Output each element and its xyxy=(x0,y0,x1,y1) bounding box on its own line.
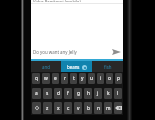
button[interactable]: p xyxy=(115,73,122,84)
staticText: m xyxy=(106,105,111,112)
button[interactable]: Send xyxy=(111,48,122,56)
staticText: y xyxy=(81,75,84,82)
staticText: n xyxy=(97,105,100,112)
button[interactable]: d xyxy=(54,88,62,99)
button[interactable]: beans xyxy=(61,61,92,72)
button[interactable]: Shift xyxy=(32,102,41,114)
button[interactable]: k xyxy=(104,88,112,99)
staticText: t xyxy=(73,75,75,82)
staticText: Do you want any Jelly xyxy=(33,49,77,55)
staticText: x xyxy=(57,105,60,112)
staticText: e xyxy=(54,75,57,82)
staticText: z xyxy=(46,105,49,112)
staticText: p xyxy=(117,75,120,82)
button[interactable]: o xyxy=(106,73,113,84)
staticText: beans xyxy=(67,64,80,70)
other: Backspace xyxy=(115,106,122,110)
staticText: h xyxy=(87,90,90,97)
button[interactable]: a xyxy=(32,88,41,99)
staticText: Vidya Ramkarni (mobile) xyxy=(33,0,81,2)
staticText: s xyxy=(46,90,49,97)
staticText: c xyxy=(67,105,70,112)
button[interactable]: j xyxy=(94,88,102,99)
staticText: u xyxy=(90,75,93,82)
button[interactable]: e xyxy=(52,73,59,84)
staticText: l xyxy=(117,90,119,97)
button[interactable]: x xyxy=(54,102,62,114)
button[interactable]: b xyxy=(84,102,92,114)
button[interactable]: Backspace xyxy=(114,102,122,114)
staticText: i xyxy=(100,75,102,82)
staticText: r xyxy=(64,75,66,82)
button[interactable]: s xyxy=(43,88,52,99)
button[interactable]: fish xyxy=(92,61,123,72)
staticText: g xyxy=(77,90,80,97)
staticText: b xyxy=(87,105,90,112)
button[interactable]: n xyxy=(94,102,102,114)
staticText: fish xyxy=(104,64,112,70)
staticText: d xyxy=(57,90,60,97)
button[interactable]: v xyxy=(74,102,82,114)
button[interactable]: q xyxy=(32,73,40,84)
button[interactable]: z xyxy=(43,102,52,114)
staticText: q xyxy=(35,75,38,82)
staticText: a xyxy=(35,90,38,97)
button[interactable]: c xyxy=(64,102,72,114)
staticText: o xyxy=(108,75,111,82)
staticText: f xyxy=(67,90,69,97)
button[interactable]: l xyxy=(114,88,122,99)
button[interactable]: g xyxy=(74,88,82,99)
button[interactable]: u xyxy=(88,73,95,84)
other: Shift xyxy=(34,105,40,111)
staticText: and xyxy=(42,64,50,70)
button[interactable]: t xyxy=(70,73,77,84)
button[interactable]: f xyxy=(64,88,72,99)
staticText: j xyxy=(97,90,99,97)
button[interactable]: i xyxy=(97,73,104,84)
button[interactable]: y xyxy=(79,73,86,84)
staticText: k xyxy=(107,90,110,97)
button[interactable]: and xyxy=(31,61,61,72)
button[interactable]: w xyxy=(42,73,50,84)
staticText: w xyxy=(44,75,48,82)
button[interactable]: r xyxy=(61,73,68,84)
button[interactable]: m xyxy=(104,102,112,114)
button[interactable]: h xyxy=(84,88,92,99)
staticText: v xyxy=(77,105,80,112)
